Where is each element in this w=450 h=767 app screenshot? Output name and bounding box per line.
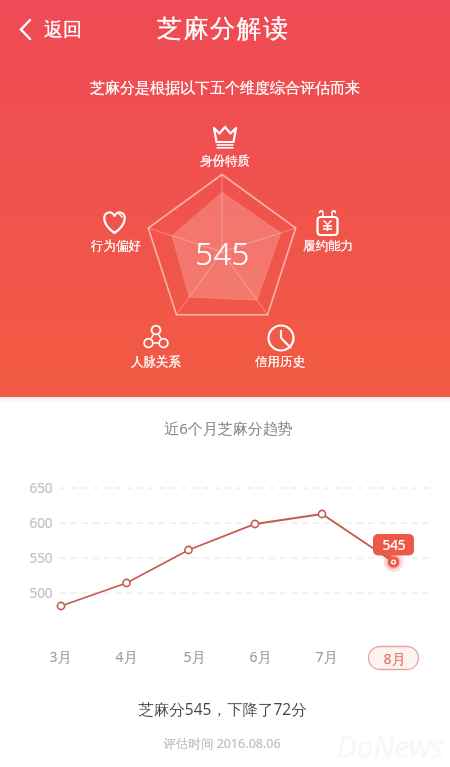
staticText: 5月 [183, 647, 206, 666]
staticText: 芝麻分解读 [157, 13, 290, 44]
staticText: 履约能力 [303, 238, 353, 254]
staticText: 人脉关系 [131, 354, 181, 370]
staticText: 芝麻分545，下降了72分 [138, 698, 307, 719]
staticText: 7月 [315, 647, 338, 666]
staticText: 返回 [44, 18, 82, 42]
staticText: 500 [29, 584, 53, 602]
staticText: 650 [29, 479, 53, 497]
staticText: 550 [29, 549, 53, 567]
staticText: 545 [195, 232, 250, 274]
staticText: 信用历史 [255, 354, 305, 370]
staticText: 评估时间 2016.08.06 [163, 735, 281, 752]
staticText: 3月 [49, 647, 72, 666]
staticText: 芝麻分是根据以下五个维度综合评估而来 [90, 79, 360, 98]
staticText: 身份特质 [200, 153, 250, 169]
button[interactable] [14, 12, 100, 48]
staticText: 600 [29, 514, 53, 532]
staticText: 545 [382, 536, 406, 554]
staticText: 近6个月芝麻分趋势 [164, 418, 293, 438]
button[interactable]: 8月 [244, 636, 450, 680]
staticText: 4月 [115, 647, 138, 666]
staticText: 6月 [249, 647, 272, 666]
staticText: 8月 [383, 649, 406, 668]
staticText: 行为偏好 [91, 238, 141, 254]
